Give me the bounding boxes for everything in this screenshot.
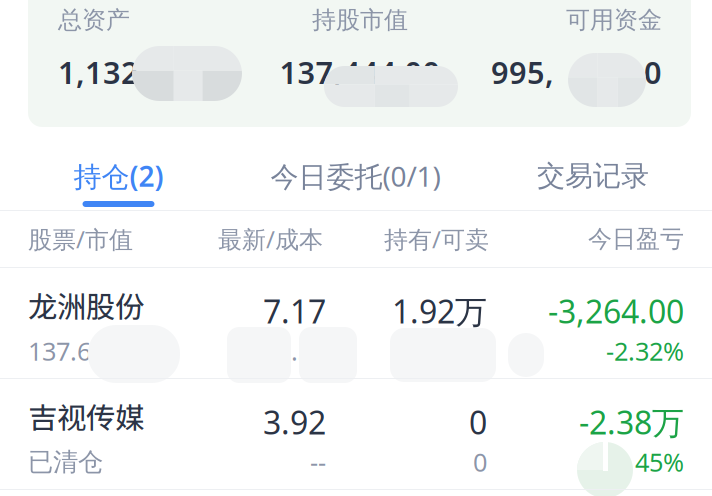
staticText: 0	[469, 401, 487, 443]
staticText: 吉视传媒	[28, 395, 144, 437]
staticText: 0	[473, 445, 487, 479]
staticText: 995, 0	[491, 52, 662, 92]
staticText: 1.92万	[392, 290, 487, 332]
staticText: 45%	[635, 445, 684, 479]
staticText: 股票/市值	[28, 223, 133, 255]
staticText: 7.34	[277, 334, 326, 368]
staticText: 已清仓	[28, 446, 103, 477]
staticText: 137.6	[28, 334, 91, 368]
button[interactable]: 今日委托(0/1)	[237, 133, 474, 210]
staticText: -3,264.00	[548, 290, 684, 332]
staticText: 3.92	[263, 401, 326, 443]
staticText: -2.32%	[606, 334, 684, 368]
staticText: 最新/成本	[218, 223, 323, 255]
staticText: 可用资金	[566, 5, 662, 35]
staticText: 总资产	[58, 5, 130, 35]
staticText: 持有/可卖	[384, 223, 489, 255]
button[interactable]: 交易记录	[474, 133, 712, 210]
button[interactable]: 持仓(2)	[0, 133, 237, 210]
staticText: -2.38万	[579, 401, 684, 443]
staticText: 持股市值	[312, 5, 408, 35]
staticText: 今日盈亏	[588, 224, 684, 254]
staticText: 龙洲股份	[28, 284, 144, 326]
staticText: --	[310, 445, 326, 479]
button[interactable]: 龙洲股份	[0, 268, 712, 379]
staticText: 交易记录	[537, 159, 649, 193]
button[interactable]: 吉视传媒	[0, 379, 712, 490]
staticText: 持仓(2)	[73, 157, 163, 195]
staticText: 137,444.00	[279, 52, 440, 92]
staticText: 7.17	[263, 290, 326, 332]
staticText: 1,132,	[58, 52, 148, 92]
staticText: 今日委托(0/1)	[270, 157, 440, 195]
